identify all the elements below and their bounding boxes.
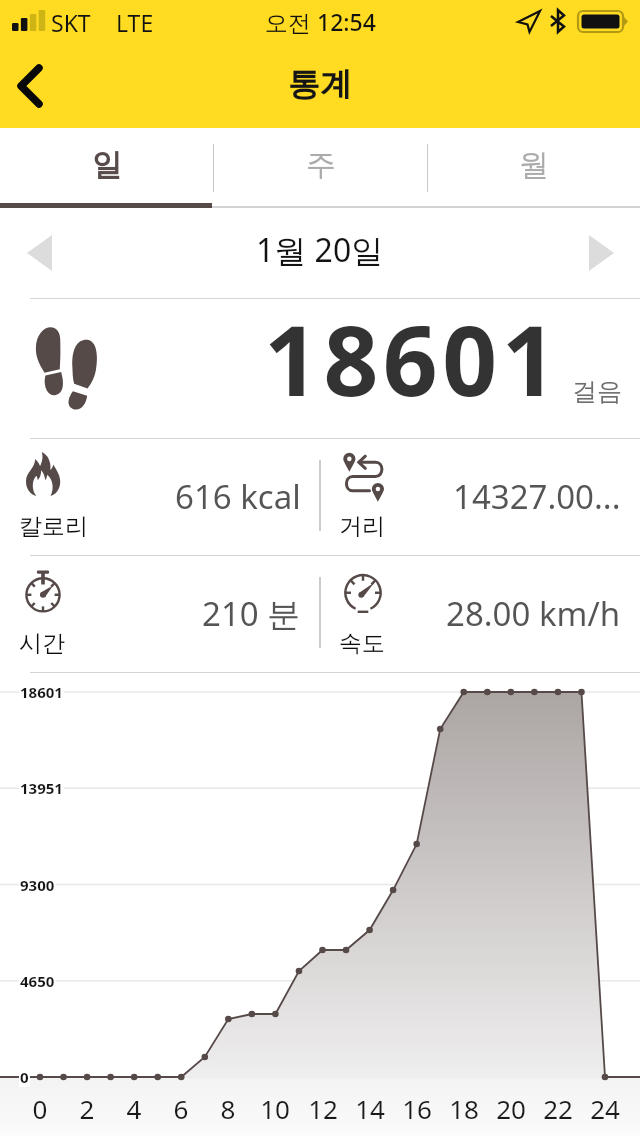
staticText: 14 [350, 1091, 390, 1126]
staticText: 12 [303, 1091, 343, 1126]
staticText: 0 [20, 1067, 29, 1087]
staticText: 칼로리 [19, 512, 88, 541]
staticText: 16 [397, 1091, 437, 1126]
staticText: 시간 [19, 629, 65, 658]
staticText: 616 kcal [175, 474, 301, 519]
staticText: 주 [306, 146, 336, 184]
button[interactable]: 일 [0, 128, 214, 208]
staticText: 18601 [264, 293, 562, 424]
staticText: SKT [51, 7, 91, 38]
button[interactable]: 시간 [0, 556, 320, 672]
button[interactable]: 거리 [320, 439, 640, 555]
button[interactable]: 속도 [320, 556, 640, 672]
button[interactable]: Previous day [14, 228, 64, 278]
staticText: 24 [585, 1091, 625, 1126]
staticText: 일 [92, 146, 122, 184]
staticText: 속도 [339, 629, 385, 658]
staticText: 14327.00... [453, 474, 621, 519]
staticText: 20 [491, 1091, 531, 1126]
staticText: 거리 [339, 512, 385, 541]
staticText: 13951 [20, 778, 63, 798]
staticText: 28.00 km/h [446, 591, 621, 636]
staticText: 9300 [20, 875, 55, 895]
button[interactable]: 월 [427, 128, 640, 208]
staticText: 18601 [20, 682, 63, 702]
staticText: LTE [116, 7, 154, 38]
staticText: 12:54 [317, 6, 376, 37]
staticText: 18 [444, 1091, 484, 1126]
staticText: 월 [519, 146, 549, 184]
staticText: 2 [67, 1091, 107, 1126]
staticText: 0 [20, 1091, 60, 1126]
staticText: 6 [161, 1091, 201, 1126]
button[interactable]: 주 [214, 128, 427, 208]
staticText: 210 분 [202, 591, 301, 636]
button[interactable]: Back [0, 56, 60, 116]
button[interactable]: 칼로리 [0, 439, 320, 555]
staticText: 1월 20일 [256, 228, 384, 272]
button[interactable]: Next day [576, 228, 626, 278]
staticText: 8 [208, 1091, 248, 1126]
staticText: 10 [255, 1091, 295, 1126]
staticText: 4 [114, 1091, 154, 1126]
staticText: 오전 [265, 6, 317, 37]
staticText: 통계 [288, 64, 352, 104]
staticText: 걸음 [572, 376, 622, 407]
staticText: 4650 [20, 971, 55, 991]
staticText: 22 [538, 1091, 578, 1126]
